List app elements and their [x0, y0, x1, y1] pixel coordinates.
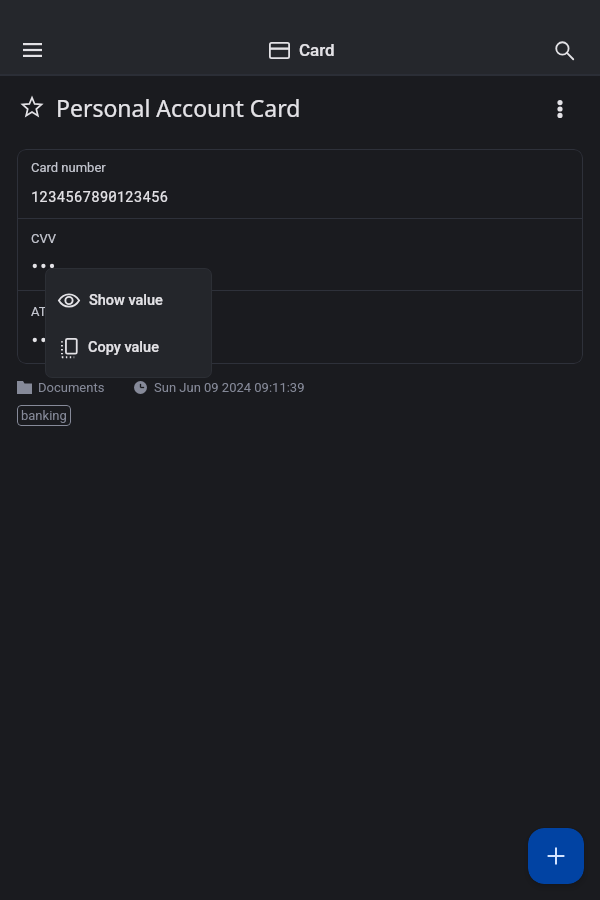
button[interactable]: CVV	[17, 219, 583, 290]
button[interactable]: ATM PIN	[17, 291, 583, 364]
button[interactable]: Card number	[17, 149, 583, 218]
staticText: Copy value	[88, 339, 159, 356]
staticText: Personal Account Card	[56, 92, 301, 123]
staticText: 1234567890123456	[31, 187, 169, 206]
staticText: banking	[21, 408, 67, 423]
staticText: Card number	[31, 160, 106, 175]
button[interactable]: Search	[544, 30, 584, 70]
staticText: Show value	[89, 292, 163, 309]
button[interactable]: Copy value	[45, 324, 212, 371]
staticText: Sun Jun 09 2024 09:11:39	[154, 380, 305, 395]
button[interactable]: Favorite	[17, 92, 47, 122]
staticText: ATM PIN	[31, 304, 83, 319]
button[interactable]: banking	[17, 405, 71, 426]
button[interactable]: Show value	[45, 277, 212, 324]
button[interactable]: Add	[528, 828, 584, 884]
staticText: Card	[299, 40, 335, 60]
staticText: Documents	[38, 380, 105, 395]
button[interactable]: Menu	[12, 30, 52, 70]
staticText: CVV	[31, 231, 57, 246]
button[interactable]: More options	[542, 89, 578, 125]
